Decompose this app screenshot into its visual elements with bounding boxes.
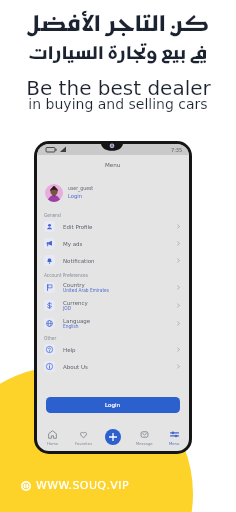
staticText: JOD [63, 306, 71, 311]
staticText: user_guest [68, 186, 94, 191]
staticText: About Us [63, 364, 88, 370]
staticText: Country [63, 282, 85, 288]
button[interactable]: About Us [37, 358, 189, 375]
staticText: Login [105, 402, 121, 409]
button[interactable]: Message [129, 430, 159, 445]
staticText: Menu [169, 441, 180, 445]
staticText: Account Preferences [44, 273, 88, 278]
staticText: Message [136, 441, 153, 445]
staticText: Login [68, 193, 82, 199]
button[interactable]: My ads [37, 235, 189, 252]
button[interactable]: Add new ad [105, 429, 121, 445]
staticText: كن التاجر الأفضل [28, 12, 209, 39]
staticText: WWW.SOUQ.VIP [36, 479, 129, 492]
button[interactable]: Menu [159, 430, 189, 445]
staticText: Other [44, 336, 57, 341]
staticText: General [44, 213, 61, 218]
staticText: Notification [63, 258, 95, 264]
staticText: Home [47, 441, 59, 445]
staticText: United Arab Emirates [63, 288, 109, 293]
button[interactable]: Help [37, 341, 189, 358]
button[interactable]: Favorites [68, 430, 99, 445]
staticText: English [63, 324, 79, 329]
staticText: My ads [63, 241, 83, 247]
staticText: Favorites [75, 441, 93, 445]
staticText: 7:35 [171, 147, 183, 153]
staticText: Language [63, 318, 91, 324]
button[interactable]: Language [37, 314, 189, 332]
button[interactable]: Currency [37, 296, 189, 314]
button[interactable]: Country [37, 278, 189, 296]
button[interactable]: Notification [37, 252, 189, 269]
staticText: in buying and selling cars [28, 96, 208, 112]
staticText: Edit Profile [63, 224, 93, 230]
staticText: في بيع وتجارة السيارات [28, 44, 208, 66]
staticText: Help [63, 347, 76, 353]
button[interactable]: Login [46, 397, 180, 413]
staticText: Be the best dealer [26, 76, 211, 99]
button[interactable]: user_guest [37, 176, 189, 209]
button[interactable]: Edit Profile [37, 218, 189, 235]
button[interactable]: Home [37, 430, 68, 445]
staticText: Currency [63, 300, 88, 306]
staticText: Menu [105, 162, 121, 169]
